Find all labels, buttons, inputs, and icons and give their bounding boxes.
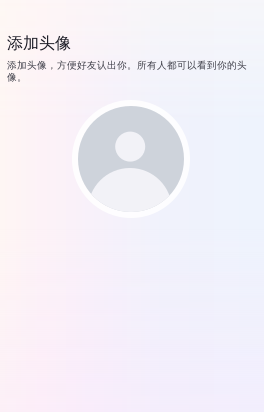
button[interactable]: Choose profile photo	[72, 100, 190, 218]
staticText: 添加头像	[7, 33, 71, 53]
staticText: 添加头像，方便好友认出你。所有人都可以看到你的头像。	[7, 59, 247, 83]
